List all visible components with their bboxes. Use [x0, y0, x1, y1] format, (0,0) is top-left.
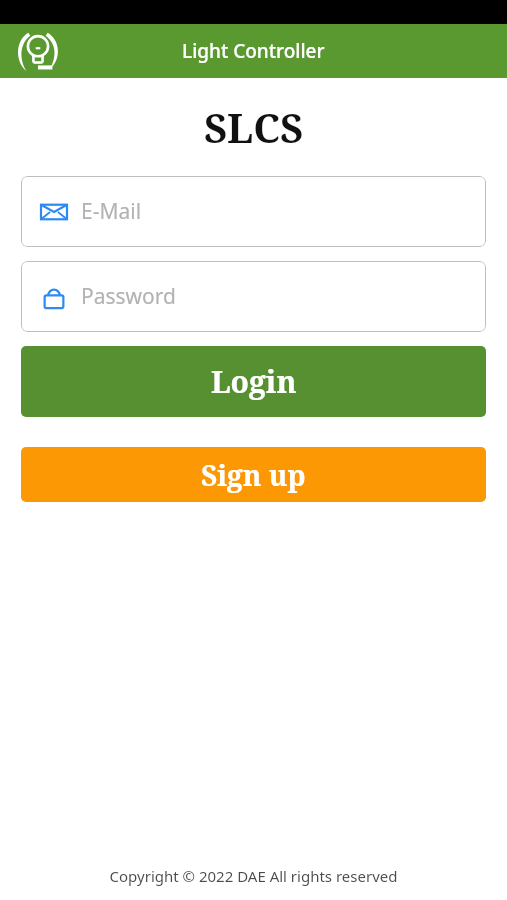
staticText: Light Controller	[182, 38, 325, 64]
button[interactable]: Sign up	[21, 447, 486, 502]
staticText: Copyright © 2022 DAE All rights reserved	[0, 866, 507, 886]
button[interactable]: DAE logo	[14, 27, 62, 75]
button[interactable]: Login	[21, 346, 486, 417]
staticText: Password	[81, 282, 176, 311]
button[interactable]: Password	[21, 261, 486, 332]
staticText: Sign up	[201, 456, 306, 494]
staticText: Login	[211, 361, 297, 402]
staticText: E-Mail	[81, 197, 142, 226]
button[interactable]: E-Mail	[21, 176, 486, 247]
staticText: SLCS	[0, 100, 507, 154]
